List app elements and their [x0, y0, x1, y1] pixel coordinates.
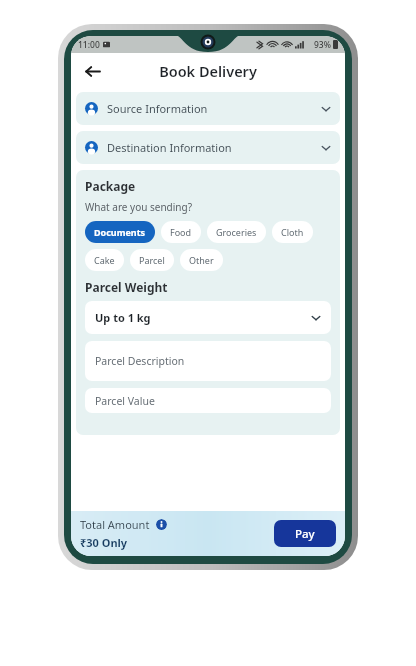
staticText: Total Amount: [80, 517, 150, 532]
staticText: 11:00: [78, 39, 100, 51]
button[interactable]: Up to 1 kg: [85, 301, 331, 334]
staticText: What are you sending?: [85, 200, 193, 214]
staticText: Cake: [94, 254, 115, 266]
staticText: Parcel Description: [95, 354, 185, 368]
button[interactable]: Documents: [85, 221, 155, 243]
button[interactable]: Groceries: [207, 221, 266, 243]
staticText: ₹30 Only: [80, 535, 128, 550]
button[interactable]: Amount info: [156, 519, 167, 530]
staticText: Other: [189, 254, 214, 266]
button[interactable]: Back: [79, 58, 105, 84]
button[interactable]: Source Information: [76, 92, 340, 125]
button[interactable]: Destination Information: [76, 131, 340, 164]
button[interactable]: Parcel: [130, 249, 174, 271]
button[interactable]: Pay: [274, 520, 336, 547]
staticText: Destination Information: [107, 140, 232, 155]
staticText: Source Information: [107, 101, 208, 116]
button[interactable]: Parcel Value: [85, 388, 331, 413]
staticText: Pay: [295, 526, 315, 542]
staticText: Food: [170, 226, 192, 238]
button[interactable]: Parcel Description: [85, 341, 331, 381]
staticText: Package: [85, 178, 136, 194]
button[interactable]: Other: [180, 249, 223, 271]
staticText: Up to 1 kg: [95, 310, 151, 325]
staticText: Parcel Value: [95, 394, 155, 408]
button[interactable]: Cloth: [272, 221, 313, 243]
staticText: Groceries: [216, 226, 257, 238]
staticText: Book Delivery: [159, 61, 257, 81]
button[interactable]: Cake: [85, 249, 124, 271]
staticText: Documents: [94, 226, 146, 238]
staticText: Cloth: [281, 226, 304, 238]
staticText: Parcel: [139, 254, 165, 266]
button[interactable]: Food: [161, 221, 201, 243]
staticText: Parcel Weight: [85, 279, 168, 295]
staticText: 93%: [314, 39, 331, 51]
